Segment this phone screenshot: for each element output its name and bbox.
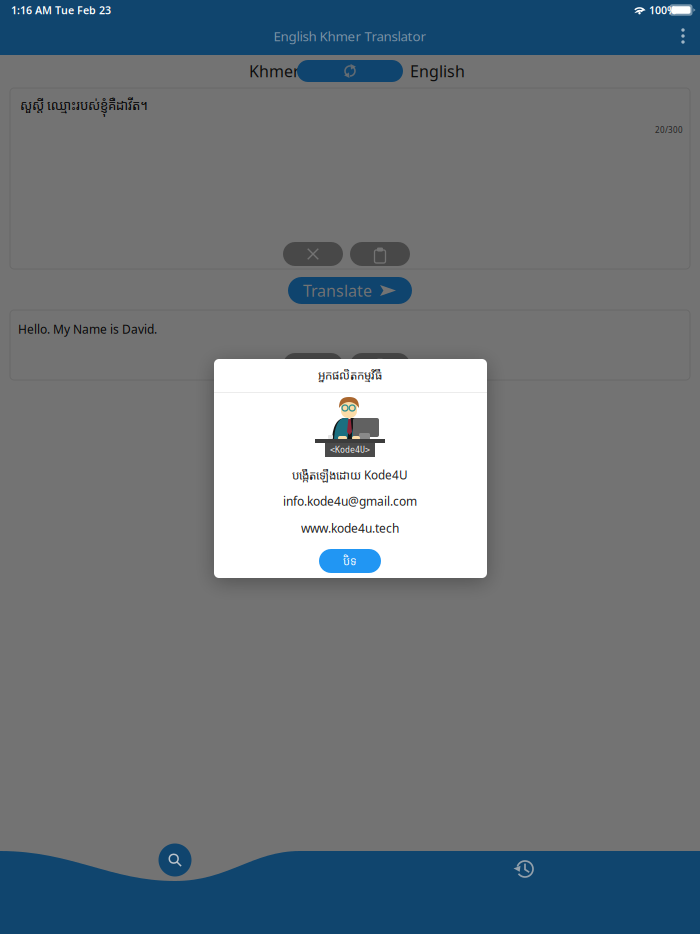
button[interactable]: History bbox=[505, 849, 545, 889]
staticText: បិទ bbox=[343, 554, 357, 568]
button[interactable]: Paste bbox=[350, 242, 410, 266]
staticText: 20/300 bbox=[655, 125, 683, 135]
button[interactable]: More options bbox=[668, 21, 698, 51]
button[interactable]: Clear text bbox=[283, 242, 343, 266]
staticText: បង្កើតឡើងដោយ Kode4U bbox=[292, 467, 408, 483]
staticText: <Kode4U> bbox=[330, 445, 370, 455]
button[interactable]: Translate bbox=[288, 277, 412, 304]
staticText: Khmer bbox=[249, 60, 300, 82]
button[interactable]: Search bbox=[153, 838, 197, 882]
staticText: Translate bbox=[303, 280, 372, 301]
staticText: អ្នកផលិតកម្មវិធី bbox=[318, 367, 382, 383]
staticText: info.kode4u@gmail.com bbox=[283, 493, 417, 509]
button[interactable]: Swap languages bbox=[297, 60, 403, 82]
button[interactable]: Copy result bbox=[350, 353, 410, 377]
staticText: 1:16 AM bbox=[11, 3, 52, 17]
button[interactable]: បិទ bbox=[319, 549, 381, 573]
staticText: សួស្ដី ឈ្មោះរបស់ខ្ញុំគឺដាវីត។ bbox=[20, 96, 148, 114]
button[interactable]: Clear result bbox=[283, 353, 343, 377]
staticText: www.kode4u.tech bbox=[301, 520, 399, 536]
staticText: Hello. My Name is David. bbox=[18, 321, 157, 337]
staticText: 100% bbox=[649, 3, 676, 17]
staticText: English Khmer Translator bbox=[273, 27, 426, 45]
staticText: English bbox=[410, 60, 465, 82]
staticText: Tue Feb 23 bbox=[55, 3, 111, 17]
